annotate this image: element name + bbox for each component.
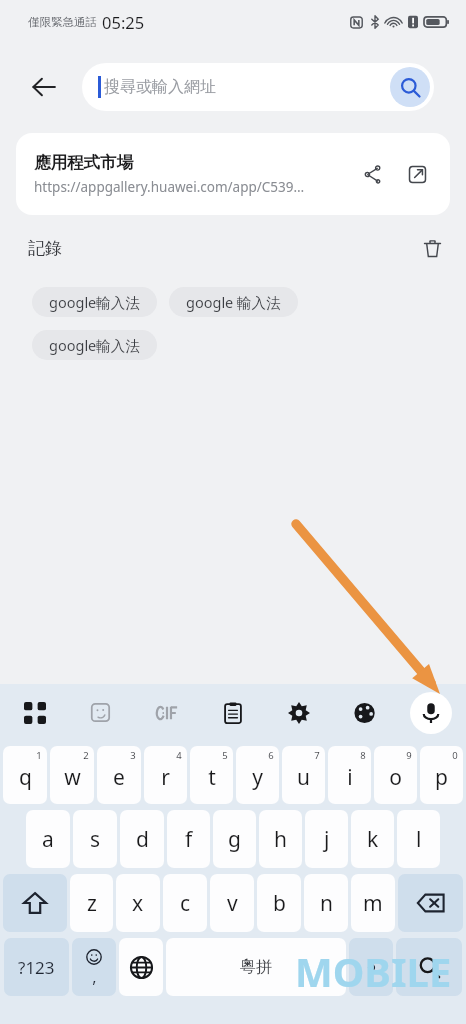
button[interactable]: c (163, 874, 207, 932)
staticText: i (347, 763, 353, 792)
button[interactable]: j (305, 810, 348, 868)
staticText: MOBILE (295, 944, 452, 998)
button[interactable]: google輸入法 (32, 287, 157, 317)
button[interactable]: e (97, 746, 141, 804)
staticText: google輸入法 (49, 335, 140, 355)
button[interactable]: v (210, 874, 254, 932)
staticText: 5 (222, 749, 228, 762)
staticText: z (87, 889, 97, 918)
staticText: 1 (36, 749, 42, 762)
button[interactable]: Apps (14, 692, 56, 734)
staticText: 2 (83, 749, 89, 762)
staticText: 記錄 (28, 238, 62, 259)
staticText: 05:25 (102, 11, 145, 33)
button[interactable]: d (120, 810, 164, 868)
staticText: l (416, 825, 422, 854)
button[interactable]: r (144, 746, 187, 804)
staticText: n (320, 889, 333, 918)
staticText: google輸入法 (49, 292, 140, 312)
button[interactable]: Clipboard (212, 692, 254, 734)
staticText: r (161, 763, 170, 792)
button[interactable]: Change language (119, 938, 163, 996)
staticText: y (252, 763, 263, 792)
button[interactable]: 粵拼 (166, 938, 346, 996)
staticText: j (324, 825, 330, 854)
staticText: 6 (268, 749, 274, 762)
button[interactable]: n (304, 874, 348, 932)
staticText: 3 (130, 749, 136, 762)
button[interactable]: Back (22, 65, 66, 109)
staticText: 4 (176, 749, 182, 762)
staticText: b (273, 889, 286, 918)
button[interactable]: b (257, 874, 301, 932)
staticText: c (180, 889, 191, 918)
staticText: ?123 (18, 956, 55, 979)
button[interactable]: Shift (3, 874, 67, 932)
staticText: t (208, 763, 216, 792)
button[interactable]: Emoji (72, 938, 116, 996)
button[interactable]: h (259, 810, 302, 868)
staticText: m (363, 889, 383, 918)
button[interactable]: 應用程式市場 (16, 133, 450, 215)
button[interactable]: Search (396, 938, 462, 996)
staticText: 8 (360, 749, 366, 762)
staticText: p (435, 763, 448, 792)
staticText: google 輸入法 (186, 292, 281, 312)
button[interactable]: Theme (344, 692, 386, 734)
button[interactable]: Open in new (398, 155, 436, 193)
button[interactable]: y (236, 746, 279, 804)
button[interactable]: Settings (278, 692, 320, 734)
staticText: d (136, 825, 149, 854)
button[interactable]: Search (390, 67, 430, 107)
button[interactable]: GIF (146, 692, 188, 734)
button[interactable]: Period (349, 938, 393, 996)
button[interactable]: ?123 (4, 938, 69, 996)
staticText: k (367, 825, 379, 854)
staticText: u (297, 763, 310, 792)
button[interactable]: f (167, 810, 210, 868)
staticText: x (132, 889, 144, 918)
staticText: w (64, 763, 81, 792)
button[interactable]: 搜尋或輸入網址 (82, 63, 434, 111)
button[interactable]: a (26, 810, 70, 868)
button[interactable]: Voice input (410, 692, 452, 734)
button[interactable]: o (374, 746, 417, 804)
staticText: 0 (452, 749, 458, 762)
button[interactable]: m (351, 874, 395, 932)
button[interactable]: Backspace (398, 874, 463, 932)
staticText: s (90, 825, 101, 854)
staticText: f (185, 825, 193, 854)
button[interactable]: Share (354, 155, 392, 193)
button[interactable]: s (73, 810, 117, 868)
button[interactable]: w (50, 746, 94, 804)
button[interactable]: p (420, 746, 463, 804)
staticText: https://appgallery.huawei.com/app/C539… (34, 178, 305, 196)
button[interactable]: i (328, 746, 371, 804)
staticText: e (113, 763, 125, 792)
button[interactable]: t (190, 746, 233, 804)
button[interactable]: Clear history (412, 228, 452, 268)
button[interactable]: l (397, 810, 440, 868)
staticText: q (19, 763, 32, 792)
staticText: , (92, 966, 97, 988)
staticText: v (227, 889, 238, 918)
staticText: 粵拼 (240, 957, 272, 977)
staticText: 應用程式市場 (34, 152, 133, 173)
button[interactable]: g (213, 810, 256, 868)
staticText: a (42, 825, 54, 854)
button[interactable]: google輸入法 (32, 330, 157, 360)
button[interactable]: google 輸入法 (169, 287, 298, 317)
staticText: 7 (314, 749, 320, 762)
staticText: g (228, 825, 241, 854)
button[interactable]: x (116, 874, 160, 932)
button[interactable]: u (282, 746, 325, 804)
button[interactable]: Stickers (80, 692, 122, 734)
button[interactable]: q (3, 746, 47, 804)
staticText: 僅限緊急通話 (28, 15, 97, 29)
staticText: 搜尋或輸入網址 (104, 77, 216, 97)
staticText: 9 (406, 749, 412, 762)
button[interactable]: z (70, 874, 113, 932)
button[interactable]: k (351, 810, 394, 868)
staticText: h (274, 825, 287, 854)
staticText: o (389, 763, 402, 792)
